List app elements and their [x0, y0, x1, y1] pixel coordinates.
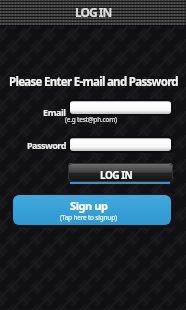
staticText: Please Enter E-mail and Password — [9, 74, 178, 90]
button[interactable]: Sign up — [13, 195, 171, 225]
staticText: (Tap here to signup) — [60, 213, 117, 222]
staticText: Password — [27, 139, 66, 151]
staticText: Sign up — [70, 198, 108, 213]
staticText: (e.g test@ph.com) — [65, 115, 117, 124]
button[interactable] — [70, 101, 171, 114]
staticText: Email — [43, 106, 66, 118]
staticText: LOG IN — [100, 168, 133, 182]
button[interactable] — [70, 138, 171, 151]
button[interactable]: LOG IN — [68, 163, 173, 182]
staticText: LOG IN — [75, 4, 112, 20]
